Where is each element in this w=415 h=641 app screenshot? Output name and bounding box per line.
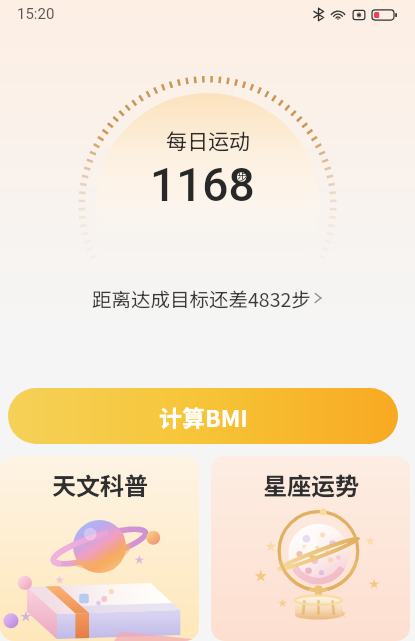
staticText: 步 [237, 168, 248, 184]
button[interactable]: 距离达成目标还差4832步 [0, 280, 415, 316]
staticText: 1168 [150, 158, 255, 212]
staticText: 星座运势 [263, 467, 359, 502]
staticText: 天文科普 [52, 467, 148, 502]
staticText: 计算BMI [159, 400, 248, 433]
button[interactable]: 星座运势 [211, 456, 410, 641]
staticText: 15:20 [17, 5, 55, 23]
staticText: 距离达成目标还差4832步 [92, 284, 311, 312]
staticText: 每日运动 [166, 125, 250, 155]
button[interactable]: 计算BMI [8, 388, 398, 444]
button[interactable]: 天文科普 [0, 456, 199, 641]
